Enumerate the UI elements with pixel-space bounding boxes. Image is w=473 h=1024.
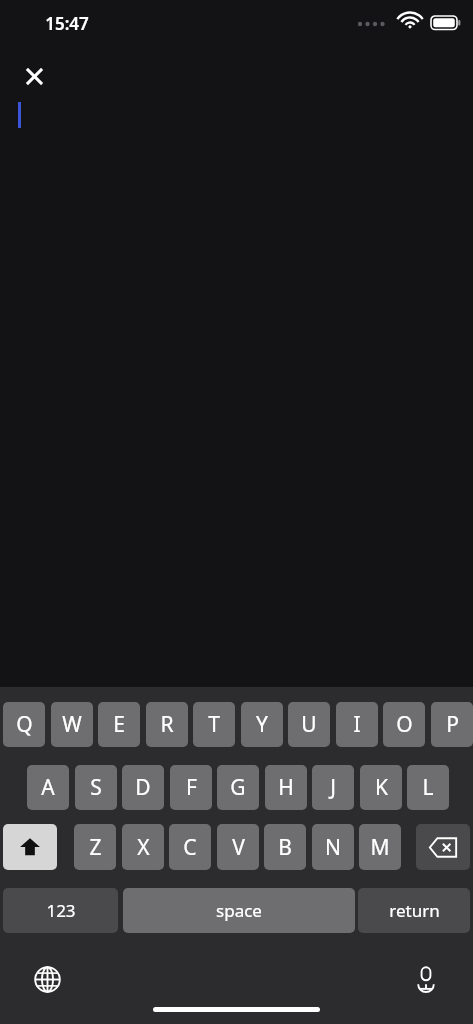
staticText: H (278, 773, 294, 802)
button[interactable]: 123 (3, 888, 118, 933)
staticText: Y (256, 710, 268, 739)
button[interactable]: J (312, 765, 354, 810)
button[interactable]: F (170, 765, 212, 810)
button[interactable]: L (407, 765, 449, 810)
button[interactable]: U (288, 702, 330, 747)
button[interactable]: Backspace (416, 824, 470, 870)
staticText: A (41, 773, 55, 802)
button[interactable]: Switch keyboard language (25, 957, 69, 1001)
button[interactable]: Close (14, 56, 54, 96)
button[interactable]: A (27, 765, 69, 810)
button[interactable]: V (217, 824, 259, 870)
staticText: V (232, 833, 245, 862)
button[interactable]: M (359, 824, 401, 870)
staticText: G (230, 773, 246, 802)
button[interactable]: X (122, 824, 164, 870)
staticText: B (278, 833, 292, 862)
staticText: M (370, 833, 390, 862)
button[interactable]: H (265, 765, 307, 810)
staticText: 123 (46, 899, 76, 922)
button[interactable]: Z (74, 824, 116, 870)
button[interactable]: B (264, 824, 306, 870)
button[interactable]: W (51, 702, 93, 747)
staticText: F (186, 773, 197, 802)
button[interactable]: N (312, 824, 354, 870)
button[interactable]: P (431, 702, 473, 747)
staticText: I (353, 710, 361, 739)
staticText: U (301, 710, 317, 739)
staticText: P (446, 710, 459, 739)
staticText: S (90, 773, 102, 802)
staticText: C (183, 833, 197, 862)
button[interactable]: return (358, 888, 470, 933)
staticText: J (330, 773, 336, 802)
button[interactable]: S (75, 765, 117, 810)
staticText: R (160, 710, 174, 739)
button[interactable]: G (217, 765, 259, 810)
staticText: O (396, 710, 413, 739)
staticText: T (208, 710, 220, 739)
staticText: E (113, 710, 125, 739)
staticText: Z (89, 833, 102, 862)
button[interactable]: space (123, 888, 355, 933)
staticText: D (135, 773, 151, 802)
button[interactable]: C (169, 824, 211, 870)
staticText: K (375, 773, 388, 802)
staticText: return (389, 899, 440, 922)
staticText: N (325, 833, 341, 862)
staticText: space (216, 899, 262, 922)
button[interactable]: Q (3, 702, 45, 747)
staticText: Q (16, 710, 33, 739)
staticText: L (422, 773, 434, 802)
button[interactable]: O (383, 702, 425, 747)
button[interactable]: D (122, 765, 164, 810)
button[interactable]: Shift (3, 824, 57, 870)
button[interactable]: R (146, 702, 188, 747)
staticText: W (62, 710, 82, 739)
button[interactable]: K (360, 765, 402, 810)
button[interactable]: Y (241, 702, 283, 747)
button[interactable]: T (193, 702, 235, 747)
staticText: 15:47 (45, 12, 89, 35)
button[interactable]: I (336, 702, 378, 747)
button[interactable]: Dictate (404, 957, 448, 1001)
button[interactable]: E (98, 702, 140, 747)
staticText: X (137, 833, 150, 862)
